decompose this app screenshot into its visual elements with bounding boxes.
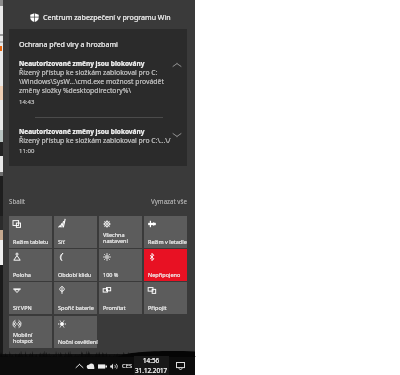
- staticText: Řízený přístup ke složkám zablokoval pro…: [19, 68, 158, 77]
- staticText: Režim v letadle: [148, 238, 187, 245]
- staticText: Poloha: [13, 271, 31, 278]
- button[interactable]: Promítat: [99, 282, 142, 314]
- staticText: Spořič baterie: [58, 304, 94, 311]
- staticText: Řízený přístup ke složkám zablokoval pro…: [19, 136, 171, 145]
- button[interactable]: Období klidu: [54, 249, 97, 281]
- button[interactable]: Expand notification: [167, 127, 187, 143]
- staticText: Sbalit: [9, 197, 26, 205]
- staticText: Vymazat vše: [151, 197, 187, 205]
- button[interactable]: Všechna nastavení: [99, 216, 142, 248]
- staticText: 14:56: [143, 356, 160, 365]
- staticText: Síť VPN: [13, 304, 32, 311]
- button[interactable]: Režim tabletu: [9, 216, 52, 248]
- staticText: Noční osvětlení: [58, 338, 98, 345]
- staticText: Všechna nastavení: [103, 231, 128, 245]
- button[interactable]: Síť VPN: [9, 282, 52, 314]
- button[interactable]: Action Center: [170, 357, 190, 375]
- button[interactable]: Noční osvětlení: [54, 316, 97, 348]
- staticText: 31.12.2017: [135, 366, 168, 375]
- staticText: Síť: [58, 238, 65, 245]
- button[interactable]: Vymazat vše: [144, 194, 187, 207]
- staticText: CES: [122, 362, 133, 370]
- button[interactable]: Volume: [108, 357, 120, 375]
- staticText: 100 %: [103, 271, 119, 278]
- button[interactable]: 100 %: [99, 249, 142, 281]
- button[interactable]: OneDrive: [84, 357, 96, 375]
- button[interactable]: Režim v letadle: [144, 216, 187, 248]
- button[interactable]: Spořič baterie: [54, 282, 97, 314]
- button[interactable]: Collapse notification: [167, 57, 187, 73]
- staticText: 14:43: [19, 98, 35, 106]
- staticText: Režim tabletu: [13, 238, 49, 245]
- button[interactable]: 14:56: [134, 356, 169, 375]
- button[interactable]: Nepřipojeno: [144, 249, 187, 281]
- staticText: \Windows\SysW...\cmd.exe možnost provádě…: [19, 77, 164, 86]
- staticText: Promítat: [103, 304, 126, 311]
- staticText: Neautorizované změny jsou blokovány: [19, 59, 145, 68]
- staticText: Nepřipojeno: [148, 271, 181, 278]
- button[interactable]: Mobilní hotspot: [9, 316, 52, 348]
- staticText: Ochrana před viry a hrozbami: [19, 39, 118, 49]
- button[interactable]: Síť: [54, 216, 97, 248]
- staticText: 11:00: [19, 147, 35, 155]
- staticText: Období klidu: [58, 271, 92, 278]
- staticText: Mobilní hotspot: [13, 331, 34, 345]
- button[interactable]: Poloha: [9, 249, 52, 281]
- staticText: Připojit: [148, 304, 167, 311]
- button[interactable]: Sbalit: [9, 194, 35, 207]
- button[interactable]: Připojit: [144, 282, 187, 314]
- staticText: změny složky %desktopdirectory%\: [19, 86, 131, 95]
- button[interactable]: Ochrana před viry a hrozbami: [9, 29, 187, 166]
- staticText: Neautorizované změny jsou blokovány: [19, 127, 145, 136]
- button[interactable]: Battery: [96, 357, 108, 375]
- staticText: Centrum zabezpečení v programu Win: [43, 12, 171, 22]
- button[interactable]: Show hidden icons: [73, 357, 85, 375]
- button[interactable]: CES: [120, 357, 134, 375]
